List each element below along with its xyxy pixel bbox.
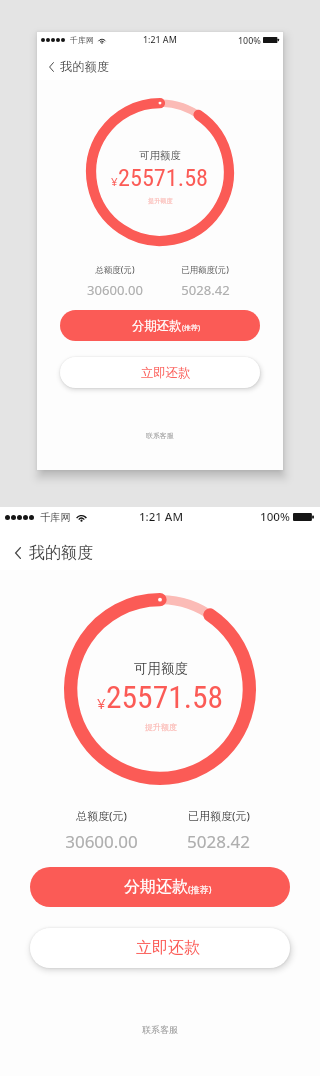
button[interactable]: 提升额度 xyxy=(145,722,177,732)
staticText: 1:21 AM xyxy=(143,34,177,46)
staticText: 30600.00 xyxy=(87,281,143,299)
other: Back xyxy=(49,62,54,72)
staticText: (推荐) xyxy=(182,323,200,332)
staticText: 千库网 xyxy=(70,35,94,45)
button[interactable]: 分期还款 xyxy=(60,310,260,341)
staticText: (推荐) xyxy=(188,883,212,895)
staticText: 立即还款 xyxy=(136,938,200,958)
staticText: 可用额度 xyxy=(134,660,188,677)
button[interactable]: 立即还款 xyxy=(60,357,260,388)
staticText: 我的额度 xyxy=(60,59,110,75)
staticText: ¥ xyxy=(97,693,106,713)
button[interactable]: 联系客服 xyxy=(142,1024,178,1035)
staticText: 我的额度 xyxy=(29,543,93,563)
staticText: 已用额度(元) xyxy=(188,808,250,823)
staticText: 25571.58 xyxy=(118,164,209,192)
button[interactable]: 立即还款 xyxy=(30,928,290,968)
staticText: 已用额度(元) xyxy=(181,264,229,276)
staticText: 1:21 AM xyxy=(139,509,183,525)
staticText: 分期还款 xyxy=(132,318,182,334)
other: Back xyxy=(15,547,21,559)
staticText: 25571.58 xyxy=(106,679,224,716)
staticText: 立即还款 xyxy=(141,365,191,381)
staticText: 千库网 xyxy=(40,511,71,524)
button[interactable]: 分期还款 xyxy=(30,867,290,907)
staticText: 30600.00 xyxy=(65,830,138,853)
staticText: 100% xyxy=(238,34,261,46)
button[interactable]: 提升额度 xyxy=(148,197,173,205)
staticText: 5028.42 xyxy=(181,281,230,299)
button[interactable]: Back xyxy=(0,537,103,569)
button[interactable]: Back xyxy=(37,54,118,80)
staticText: 分期还款 xyxy=(124,877,188,897)
staticText: 总额度(元) xyxy=(95,264,135,276)
staticText: 5028.42 xyxy=(187,830,250,853)
staticText: 可用额度 xyxy=(139,149,181,162)
staticText: ¥ xyxy=(111,174,118,190)
staticText: 总额度(元) xyxy=(76,808,127,823)
button[interactable]: 联系客服 xyxy=(146,431,174,440)
staticText: 100% xyxy=(260,509,290,525)
